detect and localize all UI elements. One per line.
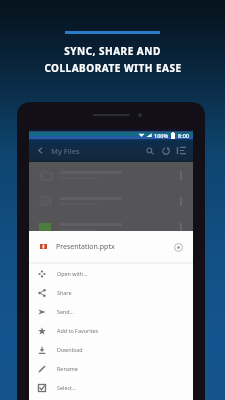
staticText: Rename	[57, 365, 78, 372]
button[interactable]: Sort	[175, 144, 188, 157]
staticText: Presentation.pptx	[56, 242, 115, 252]
staticText: Add to Favorites	[57, 327, 99, 334]
staticText: COLLABORATE WITH EASE	[44, 61, 182, 75]
button[interactable]	[29, 240, 193, 266]
staticText: Open with...	[57, 270, 88, 277]
button[interactable]: Rename	[29, 359, 193, 378]
button[interactable]: Details	[171, 240, 185, 254]
staticText: Select...	[57, 384, 77, 391]
staticText: Download	[57, 346, 83, 353]
button[interactable]: Add to Favorites	[29, 321, 193, 340]
button[interactable]: Send...	[29, 302, 193, 321]
staticText: Share	[57, 289, 72, 296]
staticText: 8:00	[178, 132, 189, 139]
button[interactable]: Search	[143, 144, 156, 157]
button[interactable]: Sync	[159, 144, 172, 157]
button[interactable]: Back	[34, 144, 47, 157]
staticText: 100%	[154, 132, 169, 139]
button[interactable]	[29, 214, 193, 240]
button[interactable]: Download	[29, 340, 193, 359]
staticText: SYNC, SHARE AND	[64, 44, 161, 58]
button[interactable]: Presentation.pptx	[29, 231, 193, 262]
staticText: My Files	[51, 146, 80, 156]
staticText: Send...	[57, 308, 74, 315]
button[interactable]: Share	[29, 283, 193, 302]
button[interactable]: Select...	[29, 378, 193, 397]
button[interactable]: Open with...	[29, 264, 193, 283]
